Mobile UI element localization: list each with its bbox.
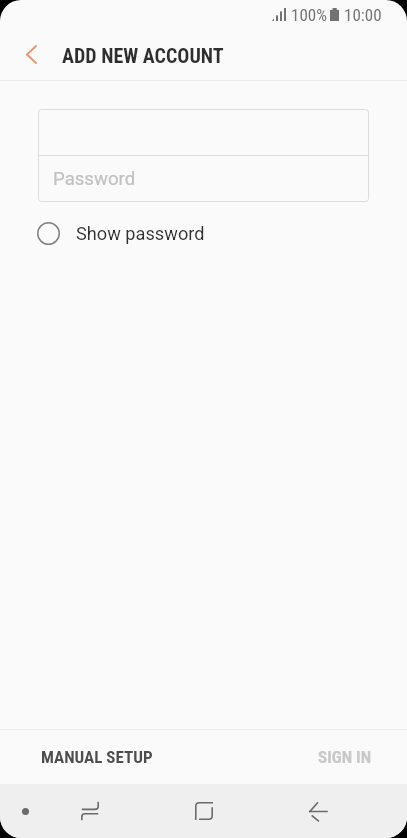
button[interactable]: Show keyboard bbox=[11, 797, 40, 826]
button[interactable]: SIGN IN bbox=[300, 730, 407, 784]
button[interactable]: Show password bbox=[30, 215, 221, 252]
staticText: Password bbox=[53, 168, 136, 190]
button[interactable]: Back bbox=[291, 784, 345, 838]
button[interactable]: Password bbox=[38, 156, 369, 202]
button[interactable]: Navigate up bbox=[0, 32, 62, 80]
staticText: 100% bbox=[291, 5, 327, 25]
staticText: ADD NEW ACCOUNT bbox=[62, 44, 224, 67]
button[interactable]: Home bbox=[177, 784, 231, 838]
button[interactable]: MANUAL SETUP bbox=[0, 730, 171, 784]
button[interactable]: Recent apps bbox=[63, 784, 117, 838]
button[interactable]: Email address bbox=[38, 109, 369, 156]
staticText: Show password bbox=[76, 223, 205, 244]
staticText: SIGN IN bbox=[318, 747, 372, 767]
staticText: MANUAL SETUP bbox=[41, 747, 153, 767]
staticText: 10:00 bbox=[344, 5, 382, 25]
